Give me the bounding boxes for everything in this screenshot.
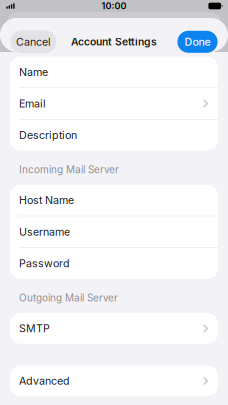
staticText: Description — [19, 129, 77, 142]
staticText: Password — [19, 257, 70, 270]
staticText: Advanced — [19, 374, 70, 387]
staticText: SMTP — [19, 322, 50, 335]
button[interactable]: Password — [10, 248, 218, 279]
button[interactable]: Name — [10, 56, 218, 87]
staticText: Cancel — [16, 35, 51, 48]
button[interactable]: SMTP — [10, 313, 218, 344]
staticText: Account Settings — [71, 35, 157, 48]
button[interactable]: Cancel — [10, 30, 56, 53]
staticText: 10:00 — [101, 0, 126, 11]
staticText: Name — [19, 65, 48, 78]
staticText: Outgoing Mail Server — [19, 292, 118, 304]
button[interactable]: Advanced — [10, 365, 218, 396]
button[interactable]: Username — [10, 216, 218, 247]
button[interactable]: Description — [10, 120, 218, 151]
staticText: Email — [19, 97, 46, 110]
staticText: Incoming Mail Server — [19, 164, 119, 176]
staticText: Username — [19, 225, 70, 238]
button[interactable]: Host Name — [10, 185, 218, 216]
button[interactable]: Email — [10, 88, 218, 119]
staticText: Host Name — [19, 194, 74, 207]
staticText: Done — [184, 35, 210, 48]
button[interactable]: Done — [177, 31, 218, 53]
